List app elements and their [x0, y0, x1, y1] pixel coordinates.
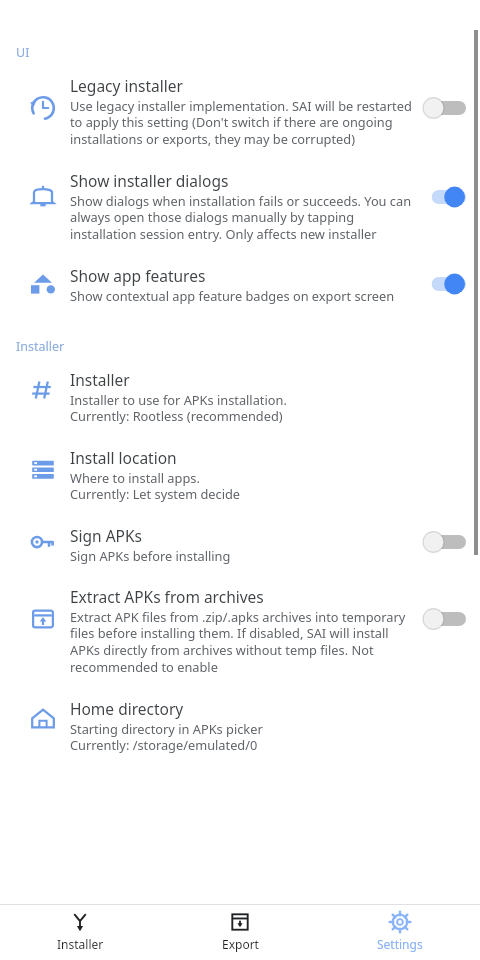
- staticText: Use legacy installer implementation. SAI…: [70, 97, 412, 148]
- staticText: Show app features: [70, 265, 206, 286]
- button[interactable]: Show app features: [0, 265, 480, 304]
- button[interactable]: Export: [160, 905, 320, 960]
- staticText: Extract APKs from archives: [70, 586, 264, 607]
- staticText: Where to install apps. Currently: Let sy…: [70, 469, 241, 503]
- button[interactable]: Toggle on: [422, 271, 466, 297]
- button[interactable]: Settings: [320, 905, 480, 960]
- staticText: Installer: [16, 338, 65, 355]
- staticText: Legacy installer: [70, 75, 183, 96]
- staticText: Installer: [57, 936, 104, 952]
- button[interactable]: Installer: [0, 905, 160, 960]
- staticText: Home directory: [70, 698, 184, 719]
- button[interactable]: Extract APKs from archives: [0, 586, 480, 676]
- button[interactable]: Show installer dialogs: [0, 170, 480, 243]
- button[interactable]: Legacy installer: [0, 75, 480, 148]
- staticText: Settings: [377, 936, 423, 952]
- button[interactable]: Installer: [0, 369, 480, 425]
- staticText: Sign APKs before installing: [70, 547, 231, 564]
- button[interactable]: Toggle off: [422, 606, 466, 632]
- staticText: Starting directory in APKs picker Curren…: [70, 720, 263, 754]
- staticText: Install location: [70, 447, 177, 468]
- staticText: Show installer dialogs: [70, 170, 229, 191]
- staticText: Sign APKs: [70, 525, 142, 546]
- staticText: Show contextual app feature badges on ex…: [70, 287, 395, 304]
- staticText: Installer: [70, 369, 130, 390]
- staticText: Show dialogs when installation fails or …: [70, 192, 412, 243]
- button[interactable]: Sign APKs: [0, 525, 480, 564]
- button[interactable]: Home directory: [0, 698, 480, 754]
- button[interactable]: Toggle off: [422, 95, 466, 121]
- staticText: Extract APK files from .zip/.apks archiv…: [70, 608, 412, 676]
- button[interactable]: Toggle on: [422, 184, 466, 210]
- staticText: Installer to use for APKs installation. …: [70, 391, 287, 425]
- staticText: UI: [16, 44, 30, 61]
- staticText: Export: [222, 936, 259, 952]
- button[interactable]: Install location: [0, 447, 480, 503]
- button[interactable]: Toggle off: [422, 529, 466, 555]
